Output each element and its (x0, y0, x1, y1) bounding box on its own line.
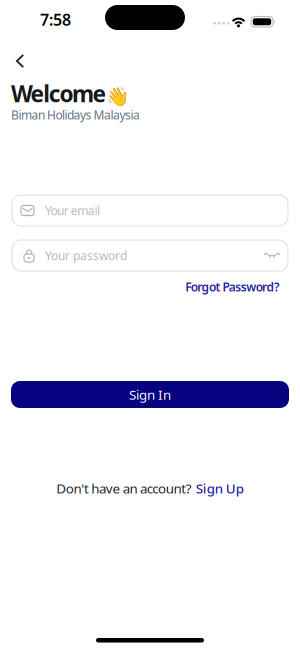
staticText: Don't have an account? (56, 479, 192, 497)
button[interactable]: Sign Up (196, 479, 244, 497)
staticText: Your password (45, 247, 127, 263)
button[interactable]: Show password (262, 245, 282, 265)
button[interactable]: Sign In (11, 381, 289, 408)
staticText: Your email (45, 202, 100, 218)
staticText: Welcome (11, 78, 107, 109)
staticText: Sign Up (196, 479, 244, 497)
button[interactable]: Forgot Password? (185, 279, 280, 295)
staticText: Biman Holidays Malaysia (11, 107, 140, 123)
staticText: 👋 (106, 86, 129, 107)
button[interactable]: Back (5, 46, 35, 76)
staticText: Forgot Password? (185, 279, 280, 295)
staticText: Sign In (129, 386, 171, 403)
staticText: 7:58 (40, 9, 71, 30)
